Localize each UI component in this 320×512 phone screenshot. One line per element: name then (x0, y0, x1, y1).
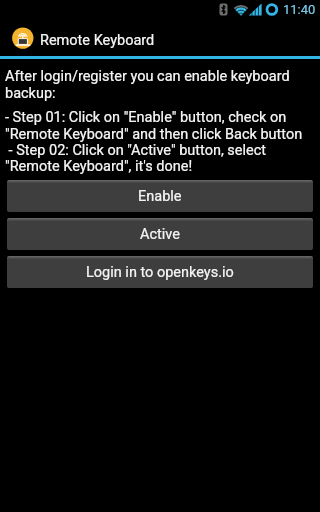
staticText: Active (140, 226, 180, 243)
staticText: Remote Keyboard (40, 32, 155, 49)
staticText: Login in to openkeys.io (86, 264, 234, 281)
button[interactable]: Login in to openkeys.io (7, 256, 313, 288)
button[interactable]: Active (7, 218, 313, 250)
staticText: 11:40 (283, 2, 316, 17)
button[interactable]: Enable (7, 180, 313, 212)
other: Remote Keyboard app icon (0, 18, 34, 56)
button[interactable]: Remote Keyboard app icon (0, 18, 160, 56)
staticText: - Step 01: Click on "Enable" button, che… (5, 109, 303, 174)
staticText: After login/register you can enable keyb… (5, 68, 290, 101)
staticText: Enable (138, 188, 182, 205)
